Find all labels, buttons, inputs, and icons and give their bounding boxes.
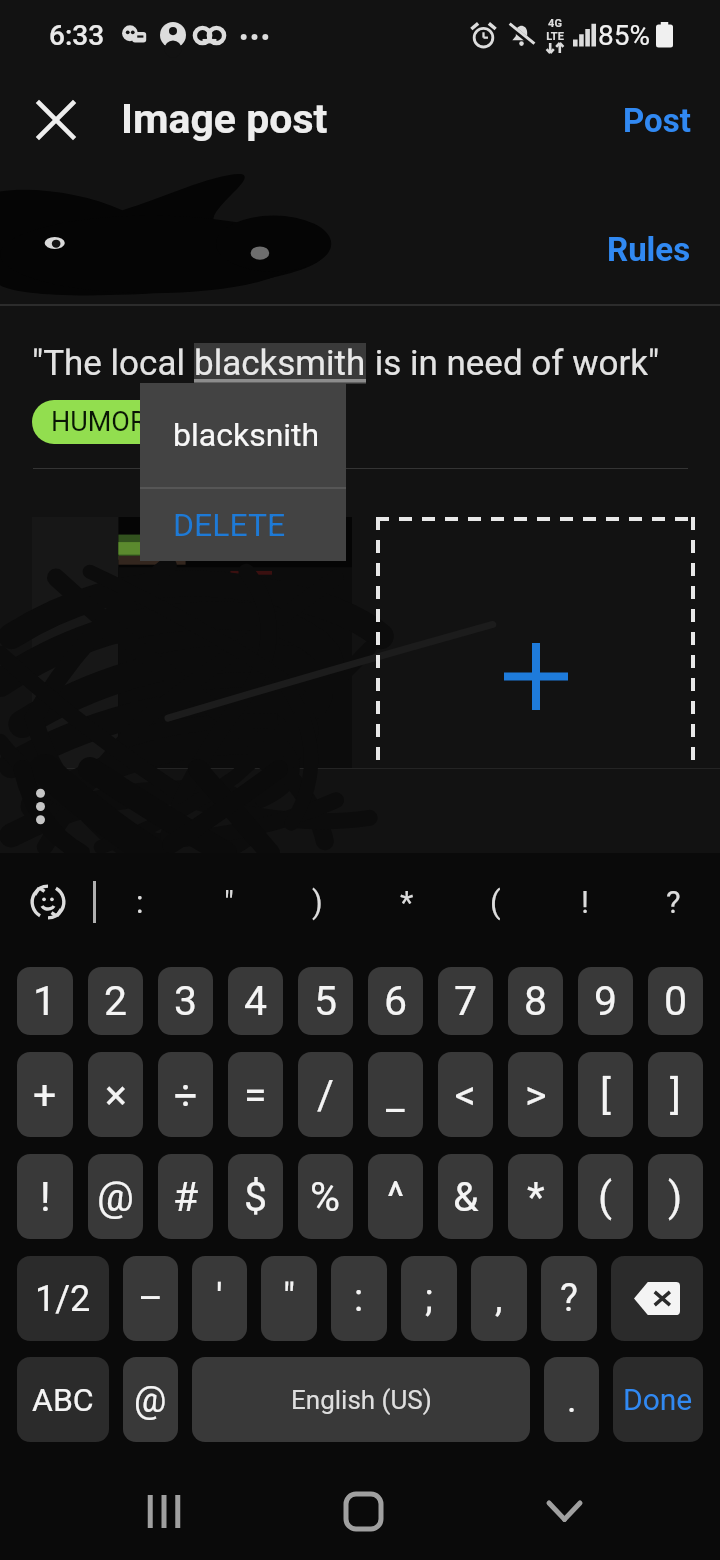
- staticText: English (US): [291, 1385, 432, 1415]
- staticText: @: [97, 1173, 134, 1221]
- button[interactable]: 2: [88, 967, 143, 1035]
- staticText: ,: [495, 1276, 503, 1321]
- button[interactable]: ×: [88, 1052, 143, 1137]
- button[interactable]: !: [540, 853, 629, 950]
- staticText: 6:33: [49, 19, 105, 52]
- staticText: blacksmith: [194, 343, 366, 384]
- staticText: &: [453, 1173, 479, 1221]
- button[interactable]: ": [184, 853, 273, 950]
- staticText: #: [173, 1173, 199, 1221]
- button[interactable]: <: [438, 1052, 493, 1137]
- button[interactable]: Home: [331, 1479, 395, 1543]
- button[interactable]: #: [158, 1154, 213, 1239]
- staticText: Image post: [121, 95, 328, 143]
- button[interactable]: :: [95, 853, 184, 950]
- button[interactable]: Close: [22, 86, 90, 154]
- button[interactable]: 9: [578, 967, 633, 1035]
- button[interactable]: Post: [623, 101, 691, 140]
- button[interactable]: :: [331, 1256, 387, 1341]
- staticText: is in need of work": [366, 343, 660, 384]
- staticText: Rules: [607, 230, 691, 269]
- button[interactable]: @: [88, 1154, 143, 1239]
- button[interactable]: 5: [298, 967, 353, 1035]
- button[interactable]: Emoji: [20, 874, 76, 930]
- button[interactable]: 6: [368, 967, 423, 1035]
- staticText: :: [354, 1276, 364, 1321]
- button[interactable]: HUMOR: [32, 400, 166, 444]
- staticText: [: [600, 1071, 611, 1119]
- button[interactable]: English (US): [192, 1357, 530, 1442]
- button[interactable]: %: [298, 1154, 353, 1239]
- staticText: 4: [244, 977, 268, 1025]
- button[interactable]: _: [368, 1052, 423, 1137]
- button[interactable]: Add image: [376, 517, 695, 768]
- button[interactable]: (: [451, 853, 540, 950]
- button[interactable]: ÷: [158, 1052, 213, 1137]
- staticText: 6: [384, 977, 408, 1025]
- button[interactable]: Backspace: [611, 1256, 703, 1341]
- button[interactable]: [32, 517, 352, 768]
- staticText: (: [598, 1173, 613, 1221]
- button[interactable]: ^: [368, 1154, 423, 1239]
- button[interactable]: /: [298, 1052, 353, 1137]
- button[interactable]: –: [123, 1256, 178, 1341]
- button[interactable]: ;: [401, 1256, 457, 1341]
- staticText: –: [138, 1276, 163, 1321]
- button[interactable]: $: [228, 1154, 283, 1239]
- staticText: .: [567, 1379, 577, 1421]
- button[interactable]: Hide keyboard: [532, 1479, 596, 1543]
- button[interactable]: Rules: [607, 230, 691, 269]
- button[interactable]: ): [273, 853, 362, 950]
- button[interactable]: ?: [629, 853, 718, 950]
- staticText: ?: [666, 884, 681, 920]
- staticText: $: [244, 1173, 268, 1221]
- staticText: ÷: [174, 1071, 198, 1119]
- button[interactable]: +: [17, 1052, 73, 1137]
- button[interactable]: DELETE: [140, 489, 346, 561]
- staticText: LTE: [546, 30, 564, 43]
- staticText: 8: [524, 977, 548, 1025]
- staticText: (: [490, 884, 501, 920]
- button[interactable]: *: [362, 853, 451, 950]
- button[interactable]: More options: [14, 780, 66, 832]
- button[interactable]: >: [508, 1052, 563, 1137]
- button[interactable]: ): [648, 1154, 703, 1239]
- button[interactable]: [: [578, 1052, 633, 1137]
- button[interactable]: ,: [471, 1256, 527, 1341]
- button[interactable]: 3: [158, 967, 213, 1035]
- button[interactable]: ABC: [17, 1357, 109, 1442]
- button[interactable]: @: [123, 1357, 178, 1442]
- staticText: ): [668, 1173, 683, 1221]
- button[interactable]: ?: [541, 1256, 597, 1341]
- button[interactable]: 8: [508, 967, 563, 1035]
- staticText: 2: [104, 977, 128, 1025]
- button[interactable]: ': [192, 1256, 247, 1341]
- button[interactable]: 0: [648, 967, 703, 1035]
- button[interactable]: ]: [648, 1052, 703, 1137]
- button[interactable]: ": [261, 1256, 317, 1341]
- button[interactable]: !: [17, 1154, 73, 1239]
- button[interactable]: blacksnith: [140, 383, 346, 487]
- button[interactable]: &: [438, 1154, 493, 1239]
- button[interactable]: 4: [228, 967, 283, 1035]
- staticText: 0: [664, 977, 688, 1025]
- staticText: blacksnith: [173, 416, 320, 454]
- button[interactable]: =: [228, 1052, 283, 1137]
- staticText: "The local: [32, 343, 194, 384]
- staticText: !: [40, 1173, 51, 1221]
- button[interactable]: *: [508, 1154, 563, 1239]
- staticText: ?: [560, 1276, 578, 1321]
- button[interactable]: Done: [613, 1357, 703, 1442]
- button[interactable]: 7: [438, 967, 493, 1035]
- button[interactable]: 1/2: [17, 1256, 109, 1341]
- button[interactable]: Recent apps: [130, 1479, 194, 1543]
- button[interactable]: 1: [17, 967, 73, 1035]
- staticText: +: [33, 1071, 57, 1119]
- button[interactable]: (: [578, 1154, 633, 1239]
- staticText: =: [244, 1071, 267, 1119]
- staticText: ': [216, 1276, 223, 1321]
- staticText: %: [310, 1173, 341, 1221]
- staticText: /: [317, 1071, 334, 1119]
- staticText: ABC: [32, 1381, 94, 1419]
- button[interactable]: .: [544, 1357, 599, 1442]
